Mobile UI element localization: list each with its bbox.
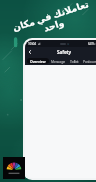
staticText: Safety <box>57 49 71 55</box>
button[interactable]: App logo <box>3 157 25 179</box>
staticText: 64% <box>88 42 95 46</box>
staticText: 10:04 <box>28 42 37 46</box>
button[interactable]: Overview <box>27 58 49 64</box>
staticText: تعاملاتك في مكان واحد <box>3 0 96 45</box>
button[interactable]: Back <box>25 47 34 56</box>
staticText: Message <box>51 59 66 64</box>
staticText: Pastoure <box>83 59 96 64</box>
button[interactable]: Message <box>49 58 68 64</box>
button[interactable]: Pastoure <box>81 58 96 64</box>
staticText: Tollet <box>70 59 79 64</box>
button[interactable]: Tollet <box>68 58 81 64</box>
staticText: Overview <box>30 59 46 64</box>
